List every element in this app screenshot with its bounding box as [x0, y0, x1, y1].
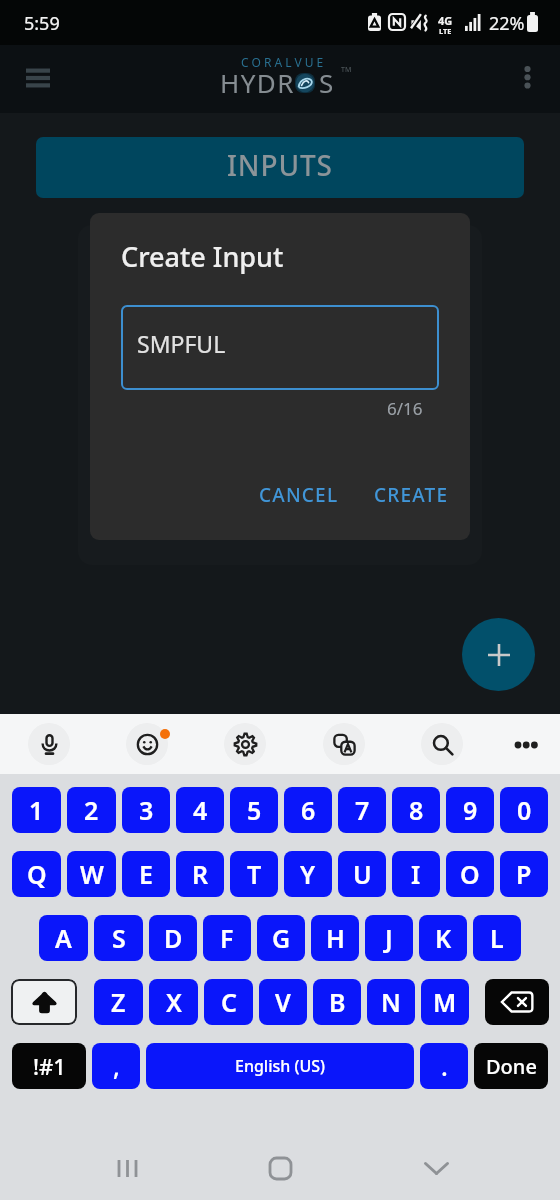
- button[interactable]: 2: [67, 787, 116, 833]
- button[interactable]: W: [67, 851, 116, 897]
- button[interactable]: V: [259, 979, 307, 1025]
- button[interactable]: 7: [338, 787, 386, 833]
- button[interactable]: More options: [505, 55, 550, 100]
- staticText: 7: [355, 793, 370, 827]
- staticText: V: [275, 985, 291, 1019]
- staticText: L: [490, 921, 504, 955]
- button[interactable]: !#1: [12, 1043, 86, 1089]
- button[interactable]: H: [311, 915, 359, 961]
- button[interactable]: O: [446, 851, 494, 897]
- button[interactable]: Recents: [103, 1144, 151, 1192]
- staticText: Create Input: [121, 238, 284, 275]
- button[interactable]: K: [419, 915, 467, 961]
- staticText: A: [55, 921, 72, 955]
- button[interactable]: Z: [94, 979, 143, 1025]
- staticText: 8: [409, 793, 424, 827]
- staticText: 0: [517, 793, 532, 827]
- button[interactable]: M: [421, 979, 469, 1025]
- button[interactable]: Add input: [462, 618, 535, 691]
- button[interactable]: X: [149, 979, 198, 1025]
- button[interactable]: 3: [122, 787, 170, 833]
- staticText: U: [353, 857, 372, 891]
- staticText: SMPFUL: [137, 328, 226, 359]
- staticText: 22%: [489, 11, 525, 36]
- button[interactable]: .: [420, 1043, 468, 1089]
- button[interactable]: I: [392, 851, 440, 897]
- button[interactable]: T: [230, 851, 278, 897]
- button[interactable]: U: [338, 851, 386, 897]
- button[interactable]: More keyboard options: [504, 723, 548, 767]
- staticText: T: [247, 857, 262, 891]
- button[interactable]: J: [365, 915, 413, 961]
- staticText: 2: [84, 793, 99, 827]
- staticText: CREATE: [374, 482, 449, 508]
- button[interactable]: 1: [12, 787, 61, 833]
- staticText: 9: [463, 793, 478, 827]
- button[interactable]: Home: [256, 1144, 304, 1192]
- button[interactable]: 6: [284, 787, 332, 833]
- staticText: 5: [247, 793, 262, 827]
- staticText: 6/16: [387, 397, 423, 420]
- button[interactable]: CANCEL: [251, 474, 347, 516]
- button[interactable]: 0: [500, 787, 548, 833]
- staticText: TM: [341, 65, 352, 75]
- button[interactable]: L: [473, 915, 521, 961]
- staticText: 3: [139, 793, 154, 827]
- staticText: 4: [193, 793, 208, 827]
- button[interactable]: Menu: [16, 56, 60, 100]
- staticText: X: [166, 985, 182, 1019]
- staticText: D: [164, 921, 183, 955]
- staticText: I: [411, 857, 421, 891]
- staticText: J: [385, 921, 393, 955]
- button[interactable]: E: [122, 851, 170, 897]
- button[interactable]: 4: [176, 787, 224, 833]
- staticText: E: [139, 857, 153, 891]
- staticText: LTE: [439, 26, 452, 36]
- button[interactable]: C: [204, 979, 253, 1025]
- button[interactable]: Backspace: [485, 979, 549, 1025]
- staticText: 4G: [438, 13, 453, 28]
- button[interactable]: R: [176, 851, 224, 897]
- button[interactable]: 5: [230, 787, 278, 833]
- button[interactable]: ,: [92, 1043, 140, 1089]
- button[interactable]: A: [39, 915, 88, 961]
- staticText: 6: [301, 793, 316, 827]
- staticText: H: [326, 921, 345, 955]
- button[interactable]: D: [149, 915, 197, 961]
- button[interactable]: Back: [412, 1144, 460, 1192]
- button[interactable]: 9: [446, 787, 494, 833]
- staticText: F: [220, 921, 234, 955]
- button[interactable]: Y: [284, 851, 332, 897]
- staticText: O: [460, 857, 480, 891]
- button[interactable]: P: [500, 851, 548, 897]
- button[interactable]: Search: [421, 723, 463, 765]
- staticText: 1: [29, 793, 44, 827]
- staticText: P: [516, 857, 532, 891]
- staticText: S: [112, 921, 126, 955]
- staticText: English (US): [235, 1055, 326, 1077]
- staticText: Q: [27, 857, 47, 891]
- staticText: INPUTS: [227, 146, 333, 184]
- button[interactable]: English (US): [146, 1043, 414, 1089]
- button[interactable]: Done: [474, 1043, 548, 1089]
- button[interactable]: Shift: [11, 979, 77, 1025]
- button[interactable]: N: [367, 979, 415, 1025]
- button[interactable]: G: [257, 915, 305, 961]
- button[interactable]: INPUTS: [36, 137, 524, 198]
- staticText: CANCEL: [259, 482, 339, 508]
- staticText: W: [80, 857, 104, 891]
- button[interactable]: S: [94, 915, 143, 961]
- button[interactable]: B: [313, 979, 361, 1025]
- button[interactable]: Keyboard settings: [224, 723, 266, 765]
- staticText: ,: [113, 1049, 120, 1083]
- staticText: CORALVUE: [241, 54, 327, 70]
- button[interactable]: Q: [12, 851, 61, 897]
- button[interactable]: Voice input: [28, 723, 70, 765]
- button[interactable]: 8: [392, 787, 440, 833]
- button[interactable]: CREATE: [366, 474, 457, 516]
- staticText: K: [435, 921, 452, 955]
- button[interactable]: Emoji: [126, 723, 168, 765]
- staticText: S: [319, 65, 335, 100]
- button[interactable]: F: [203, 915, 251, 961]
- button[interactable]: Translate: [323, 723, 365, 765]
